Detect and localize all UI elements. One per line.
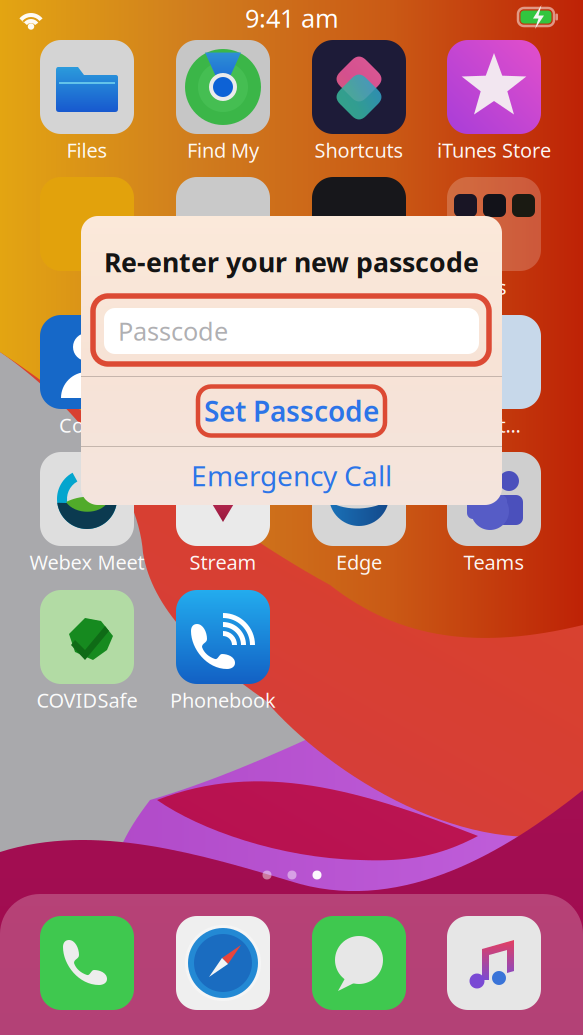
button[interactable] — [312, 916, 406, 1010]
button[interactable]: Shortcuts — [312, 40, 406, 160]
button[interactable] — [312, 315, 406, 435]
staticText: ies — [481, 274, 507, 300]
staticText: Teams — [463, 549, 524, 575]
button[interactable]: Comp — [40, 315, 134, 435]
button[interactable]: Edge — [312, 452, 406, 572]
button[interactable] — [40, 916, 134, 1010]
button[interactable]: T — [40, 177, 134, 297]
staticText: Set Passcode — [204, 392, 379, 430]
button[interactable] — [312, 177, 406, 297]
staticText: Emergency Call — [191, 457, 392, 494]
staticText: iTunes Store — [437, 137, 551, 163]
staticText: COVIDSafe — [36, 687, 137, 713]
staticText: Find My — [187, 137, 259, 163]
button[interactable]: Webex Meet — [40, 452, 134, 572]
staticText: Edge — [336, 549, 382, 575]
button[interactable]: Stream — [176, 452, 270, 572]
button[interactable]: Set Passcode — [81, 376, 502, 446]
staticText: 9:41 am — [245, 1, 339, 35]
button[interactable]: Emergency Call — [81, 446, 502, 505]
staticText: Re-enter your new passcode — [104, 244, 479, 280]
staticText: Passcode — [118, 314, 228, 348]
button[interactable] — [176, 916, 270, 1010]
staticText: Stream — [189, 549, 256, 575]
button[interactable]: iTunes Store — [447, 40, 541, 160]
button[interactable] — [447, 916, 541, 1010]
staticText: Shortcuts — [314, 137, 403, 163]
staticText: Fact... — [467, 412, 520, 438]
button[interactable] — [176, 177, 270, 297]
staticText: Files — [66, 137, 107, 163]
button[interactable]: Fact... — [447, 315, 541, 435]
button[interactable]: Phonebook — [176, 590, 270, 710]
staticText: Phonebook — [170, 687, 276, 713]
button[interactable]: COVIDSafe — [40, 590, 134, 710]
button[interactable]: Files — [40, 40, 134, 160]
button[interactable]: Find My — [176, 40, 270, 160]
button[interactable]: Teams — [447, 452, 541, 572]
staticText: Comp — [59, 412, 115, 438]
button[interactable]: ies — [447, 177, 541, 297]
staticText: Webex Meet — [29, 549, 144, 575]
button[interactable] — [176, 315, 270, 435]
